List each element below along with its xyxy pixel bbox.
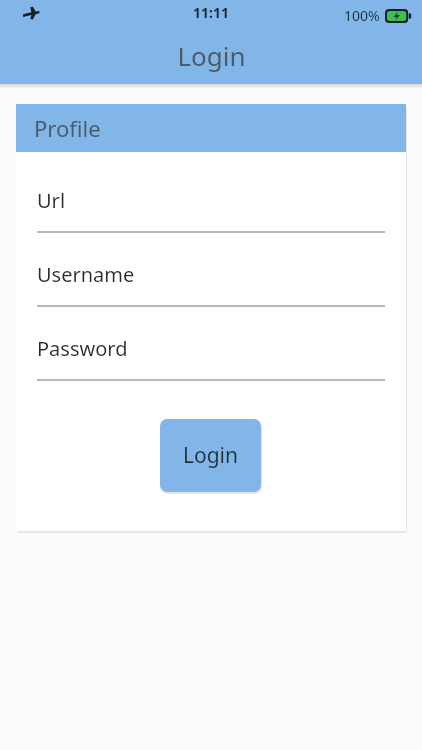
button[interactable]: Password	[16, 322, 406, 396]
other: Airplane mode	[22, 5, 40, 23]
staticText: Username	[37, 261, 135, 288]
staticText: Login	[183, 441, 239, 470]
staticText: 11:11	[193, 3, 229, 22]
staticText: Url	[37, 187, 66, 214]
staticText: Password	[37, 335, 128, 362]
staticText: Profile	[34, 113, 101, 143]
button[interactable]: Login	[160, 419, 261, 492]
staticText: 100%	[344, 6, 380, 25]
staticText: Login	[177, 38, 246, 73]
button[interactable]: Url	[16, 174, 406, 248]
button[interactable]: Username	[16, 248, 406, 322]
other: Battery charging, 100 percent	[385, 9, 412, 23]
